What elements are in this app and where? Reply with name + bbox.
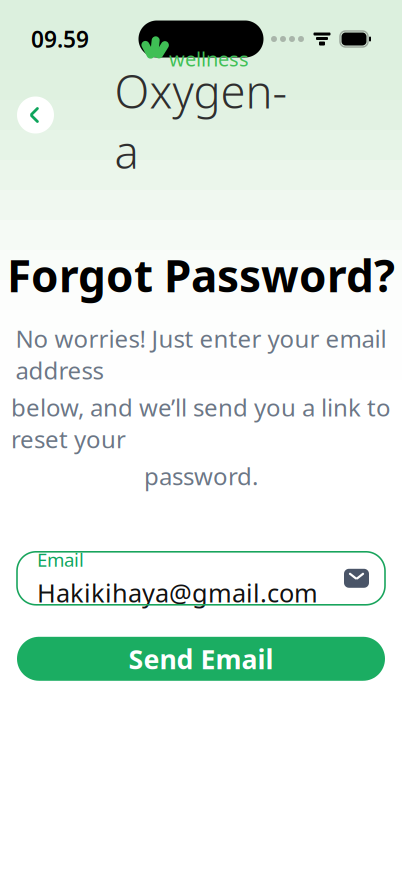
button[interactable]: Send Email bbox=[17, 637, 385, 681]
staticText: Forgot Password? bbox=[7, 246, 395, 304]
staticText: Send Email bbox=[128, 641, 273, 676]
staticText: No worries! Just enter your email addres… bbox=[15, 322, 386, 386]
staticText: wellness bbox=[169, 45, 249, 72]
staticText: Hakikihaya@gmail.com bbox=[37, 576, 318, 609]
staticText: Email bbox=[37, 547, 84, 572]
button[interactable]: Back bbox=[17, 96, 54, 133]
button[interactable]: Email bbox=[17, 552, 385, 605]
staticText: 09.59 bbox=[31, 24, 89, 54]
staticText: below, and we’ll send you a link to rese… bbox=[11, 391, 391, 455]
staticText: Oxygena bbox=[114, 61, 287, 181]
staticText: password. bbox=[144, 460, 258, 492]
